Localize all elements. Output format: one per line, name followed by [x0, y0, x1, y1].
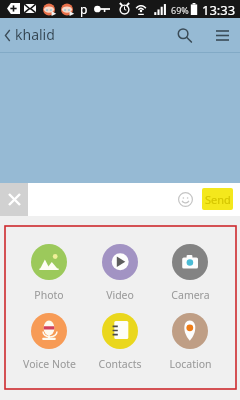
button[interactable]: khalid	[0, 20, 63, 51]
button[interactable]: Contacts	[85, 313, 155, 368]
staticText: p	[80, 1, 88, 17]
button[interactable]: Photo	[14, 244, 84, 299]
staticText: Contacts	[98, 357, 142, 368]
button[interactable]: Close	[0, 183, 28, 216]
button[interactable]: Video	[85, 244, 155, 299]
button[interactable]: Location	[155, 313, 225, 368]
staticText: 69%	[171, 4, 189, 16]
staticText: Send	[205, 192, 231, 207]
staticText: khalid	[15, 25, 55, 44]
staticText: Voice Note	[23, 357, 76, 368]
button[interactable]: Search	[170, 18, 200, 52]
button[interactable]: Emoji	[174, 188, 197, 211]
button[interactable]: Send	[202, 188, 233, 210]
staticText: Video	[106, 288, 134, 299]
staticText: Location	[169, 357, 212, 368]
button[interactable]: Camera	[155, 244, 225, 299]
staticText: 13:33	[202, 1, 236, 19]
staticText: Camera	[171, 288, 210, 299]
staticText: Photo	[34, 288, 64, 299]
button[interactable]: Menu	[207, 18, 237, 52]
button[interactable]: Voice Note	[14, 313, 84, 368]
